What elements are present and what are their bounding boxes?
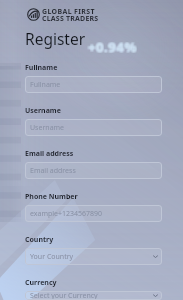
staticText: Fullname: [25, 63, 58, 73]
button[interactable]: Fullname: [25, 76, 162, 93]
staticText: Username: [25, 106, 61, 116]
staticText: Email address: [30, 166, 76, 176]
staticText: +0.94%: [87, 37, 136, 55]
staticText: +0.94%: [89, 37, 138, 55]
staticText: example+1234567890: [30, 209, 103, 219]
staticText: Register: [25, 28, 86, 49]
staticText: +0.94%: [88, 38, 137, 56]
staticText: Fullname: [30, 80, 61, 90]
staticText: Currency: [25, 278, 57, 288]
staticText: Username: [30, 123, 65, 133]
staticText: Phone Number: [25, 192, 78, 202]
staticText: Your Country: [30, 252, 74, 262]
staticText: Select your Currency: [30, 291, 98, 300]
button[interactable]: Your Country: [25, 248, 162, 265]
staticText: +0.94%: [87, 39, 136, 57]
staticText: +0.94%: [89, 38, 138, 56]
staticText: Country: [25, 235, 54, 245]
staticText: +0.94%: [87, 38, 136, 56]
staticText: +0.94%: [88, 37, 137, 55]
button[interactable]: Select your Currency: [25, 291, 162, 300]
button[interactable]: Email address: [25, 162, 162, 179]
button[interactable]: Username: [25, 119, 162, 136]
staticText: +0.94%: [89, 39, 138, 57]
button[interactable]: example+1234567890: [25, 205, 162, 222]
staticText: +0.94%: [88, 39, 137, 57]
staticText: CLASS TRADERS: [42, 14, 99, 21]
staticText: Email address: [25, 149, 74, 159]
staticText: GLOBAL FIRST: [42, 7, 95, 14]
